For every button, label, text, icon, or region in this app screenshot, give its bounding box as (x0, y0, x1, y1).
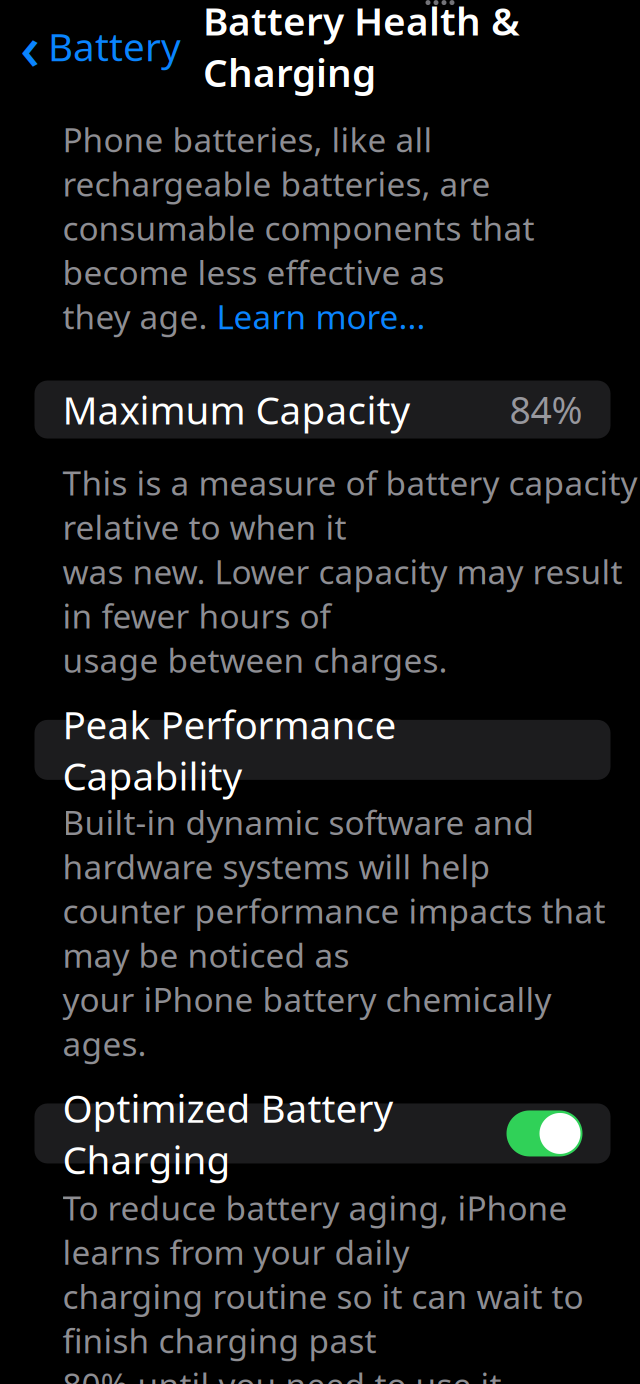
button[interactable]: Learn more... (216, 294, 425, 339)
staticText: Phone batteries, like all rechargeable b… (62, 117, 490, 206)
staticText: your iPhone battery chemically ages. (62, 977, 551, 1065)
staticText: Battery Health & Charging (203, 0, 520, 98)
button[interactable]: Optimized Battery Charging (34, 1103, 610, 1163)
staticText: usage between charges. (62, 638, 447, 682)
staticText: Peak Performance Capability (62, 698, 396, 801)
staticText: Maximum Capacity (62, 384, 410, 435)
button[interactable]: Peak Performance Capability (34, 720, 610, 780)
staticText: charging routine so it can wait to finis… (62, 1274, 583, 1362)
staticText: Optimized Battery Charging (62, 1082, 393, 1185)
staticText: 80% until you need to use it. (62, 1362, 510, 1384)
staticText: To reduce battery aging, iPhone learns f… (62, 1185, 567, 1274)
button[interactable]: ‹ (0, 0, 181, 95)
staticText: consumable components that become less e… (62, 206, 534, 294)
staticText: Battery (48, 20, 181, 72)
staticText: Learn more... (216, 294, 425, 339)
staticText: Built-in dynamic software and hardware s… (62, 800, 534, 888)
staticText: they age. (62, 294, 216, 339)
staticText: counter performance impacts that may be … (62, 888, 605, 977)
staticText: was new. Lower capacity may result in fe… (62, 549, 622, 638)
button[interactable]: Maximum Capacity (34, 380, 610, 438)
staticText: 84% (509, 385, 582, 434)
staticText: ‹ (20, 5, 40, 87)
staticText: This is a measure of battery capacity re… (62, 460, 637, 549)
